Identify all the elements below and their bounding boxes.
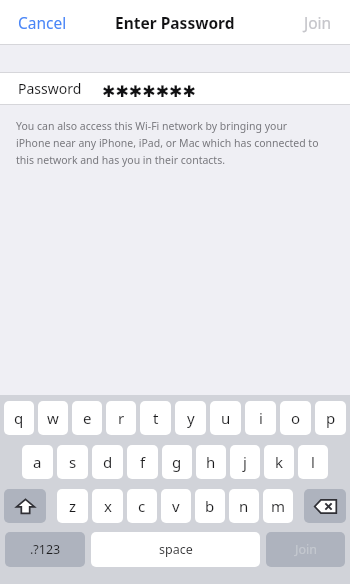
- staticText: s: [69, 452, 77, 472]
- button[interactable]: i: [245, 401, 276, 435]
- staticText: z: [69, 496, 77, 516]
- button[interactable]: space: [91, 532, 260, 567]
- button[interactable]: j: [230, 445, 260, 479]
- staticText: Password: [18, 79, 82, 98]
- button[interactable]: k: [264, 445, 294, 479]
- button[interactable]: h: [196, 445, 226, 479]
- button[interactable]: x: [92, 489, 123, 523]
- staticText: a: [33, 452, 42, 472]
- staticText: c: [138, 496, 146, 516]
- button[interactable]: m: [263, 489, 293, 523]
- button[interactable]: y: [175, 401, 206, 435]
- button[interactable]: z: [57, 489, 88, 523]
- staticText: y: [187, 408, 195, 428]
- staticText: p: [326, 408, 336, 428]
- staticText: v: [172, 496, 180, 516]
- button[interactable]: b: [195, 489, 225, 523]
- staticText: f: [140, 452, 146, 472]
- button[interactable]: Password: [0, 73, 350, 104]
- staticText: Cancel: [18, 12, 67, 33]
- button[interactable]: Join: [266, 532, 345, 567]
- staticText: u: [221, 408, 231, 428]
- staticText: iPhone near any iPhone, iPad, or Mac whi…: [16, 136, 319, 150]
- button[interactable]: f: [127, 445, 158, 479]
- staticText: k: [275, 452, 284, 472]
- staticText: r: [118, 408, 125, 428]
- button[interactable]: c: [127, 489, 157, 523]
- button[interactable]: o: [280, 401, 311, 435]
- staticText: w: [47, 408, 59, 428]
- staticText: m: [271, 496, 286, 516]
- staticText: h: [206, 452, 216, 472]
- button[interactable]: s: [57, 445, 88, 479]
- staticText: Join: [304, 12, 332, 33]
- staticText: d: [103, 452, 113, 472]
- button[interactable]: l: [298, 445, 328, 479]
- staticText: e: [83, 408, 92, 428]
- staticText: this network and has you in their contac…: [16, 153, 226, 167]
- button[interactable]: Cancel: [0, 2, 85, 43]
- staticText: You can also access this Wi-Fi network b…: [16, 119, 288, 133]
- staticText: t: [153, 408, 159, 428]
- staticText: l: [311, 452, 315, 472]
- button[interactable]: n: [229, 489, 259, 523]
- button[interactable]: u: [210, 401, 241, 435]
- button[interactable]: v: [161, 489, 191, 523]
- staticText: j: [243, 452, 247, 472]
- staticText: q: [14, 408, 24, 428]
- button[interactable]: g: [162, 445, 192, 479]
- staticText: space: [159, 541, 193, 558]
- button[interactable]: w: [38, 401, 68, 435]
- button[interactable]: Shift: [4, 489, 46, 523]
- button[interactable]: a: [22, 445, 53, 479]
- button[interactable]: Backspace: [304, 489, 346, 523]
- button[interactable]: p: [315, 401, 346, 435]
- staticText: i: [259, 408, 263, 428]
- staticText: Enter Password: [115, 12, 235, 33]
- staticText: x: [104, 496, 112, 516]
- staticText: g: [172, 452, 182, 472]
- button[interactable]: t: [140, 401, 171, 435]
- staticText: b: [205, 496, 215, 516]
- button[interactable]: Join: [286, 2, 350, 43]
- button[interactable]: .?123: [5, 532, 85, 567]
- staticText: n: [239, 496, 249, 516]
- staticText: o: [291, 408, 301, 428]
- button[interactable]: d: [92, 445, 123, 479]
- button[interactable]: e: [72, 401, 102, 435]
- button[interactable]: q: [4, 401, 34, 435]
- staticText: Join: [295, 541, 317, 558]
- staticText: ✱✱✱✱✱✱✱: [102, 82, 196, 101]
- button[interactable]: r: [106, 401, 136, 435]
- staticText: .?123: [30, 541, 61, 558]
